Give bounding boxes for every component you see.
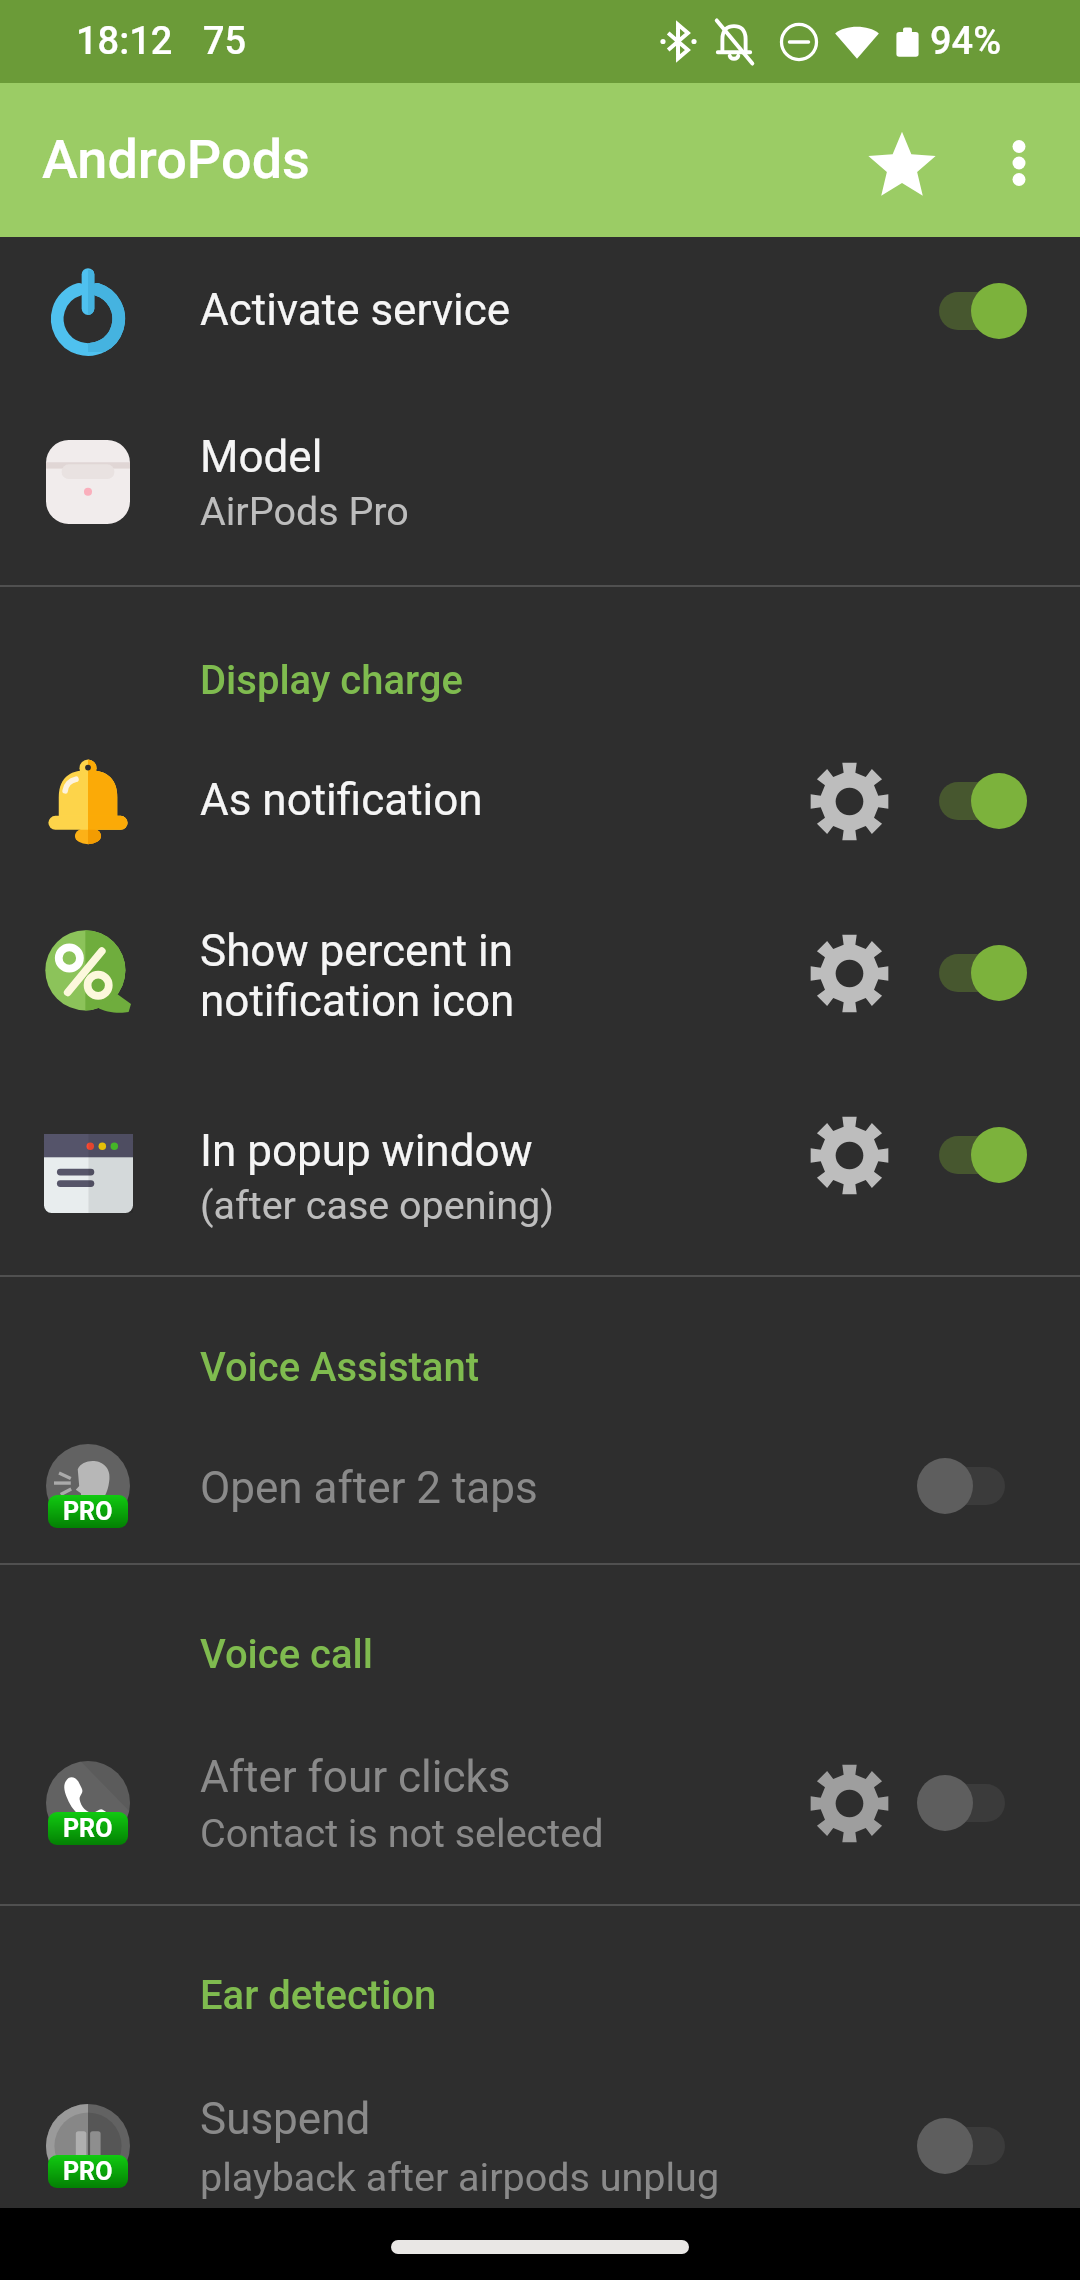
- staticText: 94%: [930, 19, 1002, 64]
- staticText: Display charge: [200, 657, 463, 704]
- button[interactable]: Settings: [789, 741, 909, 861]
- staticText: Voice call: [200, 1631, 373, 1678]
- staticText: PRO: [63, 1814, 113, 1843]
- button[interactable]: As notification: [0, 715, 1080, 887]
- staticText: notification icon: [200, 975, 515, 1027]
- button[interactable]: Toggle: [901, 1431, 1051, 1541]
- button[interactable]: Model: [0, 390, 1080, 585]
- button[interactable]: PRO: [0, 1700, 1080, 1904]
- button[interactable]: Toggle: [901, 918, 1051, 1028]
- staticText: AirPods Pro: [200, 488, 409, 534]
- button[interactable]: More options: [955, 99, 1080, 227]
- staticText: PRO: [63, 1497, 113, 1526]
- button[interactable]: Settings: [789, 1743, 909, 1863]
- staticText: Show percent in: [200, 925, 513, 977]
- staticText: Model: [200, 431, 323, 483]
- staticText: As notification: [200, 774, 483, 826]
- staticText: After four clicks: [200, 1751, 511, 1803]
- button[interactable]: Activate service: [0, 237, 1080, 390]
- button[interactable]: In popup window: [0, 1069, 1080, 1275]
- button[interactable]: Toggle: [901, 256, 1051, 366]
- button[interactable]: Settings: [789, 913, 909, 1033]
- button[interactable]: Toggle: [901, 2091, 1051, 2201]
- button[interactable]: Favorite: [830, 93, 974, 237]
- button[interactable]: Show percent in: [0, 887, 1080, 1069]
- button[interactable]: Toggle: [901, 746, 1051, 856]
- staticText: Contact is not selected: [200, 1810, 604, 1856]
- button[interactable]: Settings: [789, 1095, 909, 1215]
- staticText: Activate service: [200, 284, 511, 336]
- staticText: 18:12: [76, 19, 173, 64]
- staticText: In popup window: [200, 1125, 533, 1177]
- button[interactable]: Toggle: [901, 1748, 1051, 1858]
- button[interactable]: PRO: [0, 2040, 1080, 2208]
- staticText: (after case opening): [200, 1182, 554, 1228]
- staticText: PRO: [63, 2157, 113, 2186]
- staticText: 75: [203, 19, 247, 64]
- button[interactable]: Toggle: [901, 1100, 1051, 1210]
- staticText: Suspend: [200, 2093, 371, 2145]
- staticText: AndroPods: [42, 128, 310, 191]
- staticText: playback after airpods unplug: [200, 2154, 720, 2200]
- button[interactable]: PRO: [0, 1405, 1080, 1563]
- staticText: Ear detection: [200, 1972, 437, 2019]
- staticText: Open after 2 taps: [200, 1462, 538, 1514]
- staticText: Voice Assistant: [200, 1344, 480, 1391]
